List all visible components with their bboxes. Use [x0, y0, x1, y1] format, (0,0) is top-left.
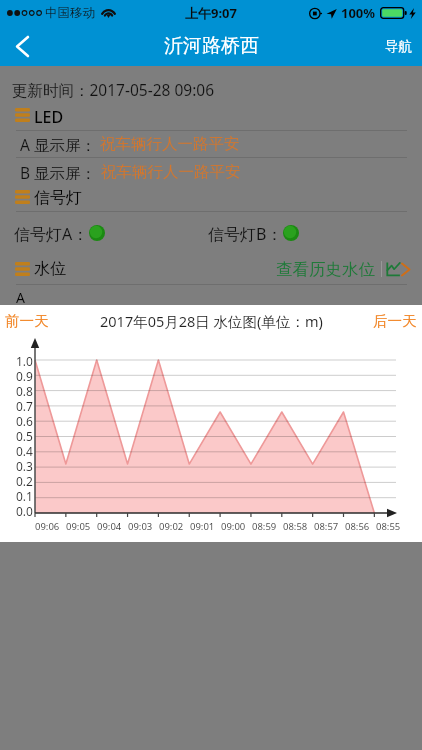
staticText: 查看历史水位: [276, 259, 375, 280]
button[interactable]: 前一天: [5, 305, 49, 337]
staticText: 08:57: [314, 520, 339, 533]
staticText: 0.5: [16, 428, 33, 443]
staticText: 导航: [385, 38, 412, 55]
staticText: 0.6: [16, 413, 33, 428]
staticText: 信号灯A：: [14, 223, 89, 243]
staticText: 100%: [341, 4, 376, 22]
staticText: 08:56: [345, 520, 370, 533]
staticText: 沂河路桥西: [164, 34, 259, 58]
staticText: 祝车辆行人一路平安: [100, 134, 240, 152]
button[interactable]: 查看历史水位: [276, 256, 412, 282]
staticText: 09:03: [128, 520, 153, 533]
staticText: 水位: [34, 259, 66, 279]
staticText: 前一天: [5, 312, 49, 330]
staticText: 信号灯B：: [208, 223, 283, 243]
staticText: A: [16, 288, 25, 307]
staticText: LED: [34, 106, 64, 124]
staticText: 中国移动: [45, 5, 95, 21]
staticText: 09:04: [97, 520, 122, 533]
staticText: 2017年05月28日 水位图(单位：m): [100, 311, 323, 331]
staticText: B 显示屏：: [20, 162, 97, 180]
staticText: 上午9:07: [185, 4, 237, 22]
staticText: 0.3: [16, 458, 33, 473]
staticText: 0.4: [16, 443, 33, 458]
button[interactable]: Back: [0, 26, 44, 66]
staticText: 09:00: [221, 520, 246, 533]
staticText: 09:01: [190, 520, 215, 533]
staticText: 0.2: [16, 473, 33, 488]
staticText: 1.0: [16, 353, 33, 368]
staticText: 08:59: [252, 520, 277, 533]
staticText: 09:06: [35, 520, 60, 533]
button[interactable]: 导航: [385, 26, 412, 66]
staticText: 0.8: [16, 383, 33, 398]
staticText: 信号灯: [34, 188, 82, 206]
staticText: 09:02: [159, 520, 184, 533]
button[interactable]: 后一天: [373, 305, 417, 337]
staticText: 08:58: [283, 520, 308, 533]
staticText: 0.0: [16, 503, 33, 518]
staticText: 0.1: [16, 488, 33, 503]
staticText: 08:55: [376, 520, 401, 533]
staticText: 0.7: [16, 398, 33, 413]
staticText: 09:05: [66, 520, 91, 533]
staticText: 后一天: [373, 312, 417, 330]
staticText: 更新时间：2017-05-28 09:06: [12, 79, 215, 100]
staticText: 祝车辆行人一路平安: [101, 162, 241, 180]
staticText: A 显示屏：: [20, 134, 96, 152]
staticText: 0.9: [16, 368, 33, 383]
